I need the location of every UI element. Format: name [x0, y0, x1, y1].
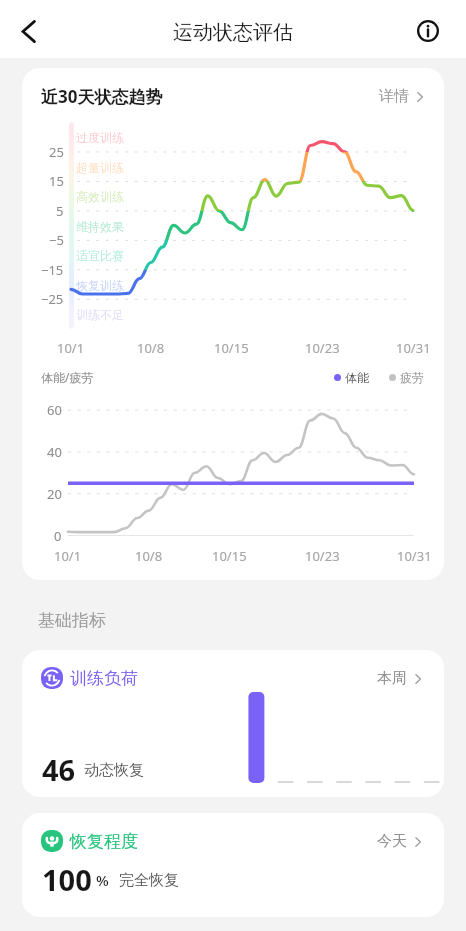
staticText: 10/8: [137, 339, 165, 357]
button[interactable]: 恢复程度: [22, 813, 444, 917]
staticText: 训练负荷: [70, 668, 138, 689]
staticText: 今天: [377, 832, 407, 851]
staticText: 恢复程度: [70, 831, 138, 852]
button[interactable]: 训练负荷: [22, 650, 444, 797]
staticText: 25: [49, 143, 64, 161]
staticText: 本周: [377, 669, 407, 688]
staticText: 恢复训练: [76, 278, 124, 293]
staticText: 详情: [379, 87, 409, 106]
staticText: 疲劳: [400, 370, 424, 385]
button[interactable]: Back: [5, 8, 51, 54]
staticText: 10/23: [305, 547, 340, 565]
staticText: %: [96, 870, 109, 890]
staticText: 过度训练: [76, 130, 124, 145]
staticText: −25: [41, 290, 64, 308]
staticText: 体能: [345, 370, 369, 385]
button[interactable]: 今天: [377, 832, 424, 851]
staticText: 超量训练: [76, 160, 124, 175]
staticText: 10/15: [212, 547, 247, 565]
staticText: 训练不足: [76, 307, 124, 322]
staticText: 40: [47, 443, 62, 461]
staticText: 10/15: [214, 339, 249, 357]
staticText: 基础指标: [38, 610, 106, 631]
staticText: 10/1: [57, 339, 85, 357]
staticText: 近30天状态趋势: [41, 85, 163, 108]
staticText: 高效训练: [76, 189, 124, 204]
staticText: 运动状态评估: [173, 20, 293, 45]
staticText: 15: [49, 172, 64, 190]
staticText: 完全恢复: [119, 871, 179, 890]
staticText: −15: [41, 261, 64, 279]
staticText: 60: [47, 401, 62, 419]
staticText: 10/8: [135, 547, 163, 565]
staticText: 体能/疲劳: [41, 369, 94, 385]
staticText: 10/31: [396, 339, 431, 357]
staticText: 0: [54, 527, 62, 545]
button[interactable]: 详情: [379, 87, 426, 106]
staticText: 10/1: [54, 547, 82, 565]
staticText: 20: [47, 485, 62, 503]
staticText: 动态恢复: [84, 761, 144, 780]
staticText: 46: [42, 750, 76, 782]
staticText: −5: [49, 231, 64, 249]
staticText: 适宜比赛: [76, 248, 124, 263]
staticText: 5: [56, 202, 64, 220]
staticText: 10/31: [397, 547, 432, 565]
staticText: 维持效果: [76, 219, 124, 234]
staticText: 10/23: [305, 339, 340, 357]
staticText: 100: [42, 860, 92, 892]
button[interactable]: Info: [405, 8, 451, 54]
button[interactable]: 本周: [377, 669, 424, 688]
